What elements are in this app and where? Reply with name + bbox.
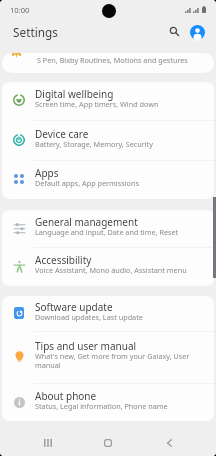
button[interactable]: Back xyxy=(152,426,186,456)
staticText: Settings xyxy=(13,24,58,40)
button[interactable]: Recents xyxy=(31,426,65,456)
staticText: Default apps, App permissions xyxy=(35,178,139,188)
button[interactable]: About phone xyxy=(2,384,214,421)
staticText: General management xyxy=(35,215,138,229)
staticText: Status, Legal information, Phone name xyxy=(35,401,168,411)
staticText: Language and input, Date and time, Reset xyxy=(35,227,179,237)
button[interactable]: Account xyxy=(186,20,208,42)
staticText: Apps xyxy=(35,166,59,180)
button[interactable]: General management xyxy=(2,210,214,247)
button[interactable]: Software update xyxy=(2,296,214,331)
button[interactable]: S Pen, Bixby Routines, Motions and gestu… xyxy=(2,53,214,73)
button[interactable]: Accessibility xyxy=(2,248,214,286)
staticText: S Pen, Bixby Routines, Motions and gestu… xyxy=(37,55,188,65)
button[interactable]: Apps xyxy=(2,161,214,199)
staticText: Battery, Storage, Memory, Security xyxy=(35,139,153,149)
staticText: Digital wellbeing xyxy=(35,87,114,101)
button[interactable]: Search xyxy=(164,21,184,41)
staticText: Screen time, App timers, Wind down xyxy=(35,99,159,109)
button[interactable]: Tips and user manual xyxy=(2,332,214,383)
staticText: About phone xyxy=(35,389,97,403)
button[interactable]: Device care xyxy=(2,121,214,160)
staticText: Download updates, Last update xyxy=(35,312,143,322)
staticText: Device care xyxy=(35,127,89,141)
staticText: What's new, Get more from your Galaxy, U… xyxy=(35,351,204,370)
button[interactable]: Digital wellbeing xyxy=(2,82,214,120)
staticText: Accessibility xyxy=(35,253,92,267)
staticText: Tips and user manual xyxy=(35,339,137,353)
staticText: Software update xyxy=(35,300,113,314)
staticText: 10:00 xyxy=(10,5,30,15)
button[interactable]: Home xyxy=(91,426,125,456)
staticText: Voice Assistant, Mono audio, Assistant m… xyxy=(35,265,187,275)
